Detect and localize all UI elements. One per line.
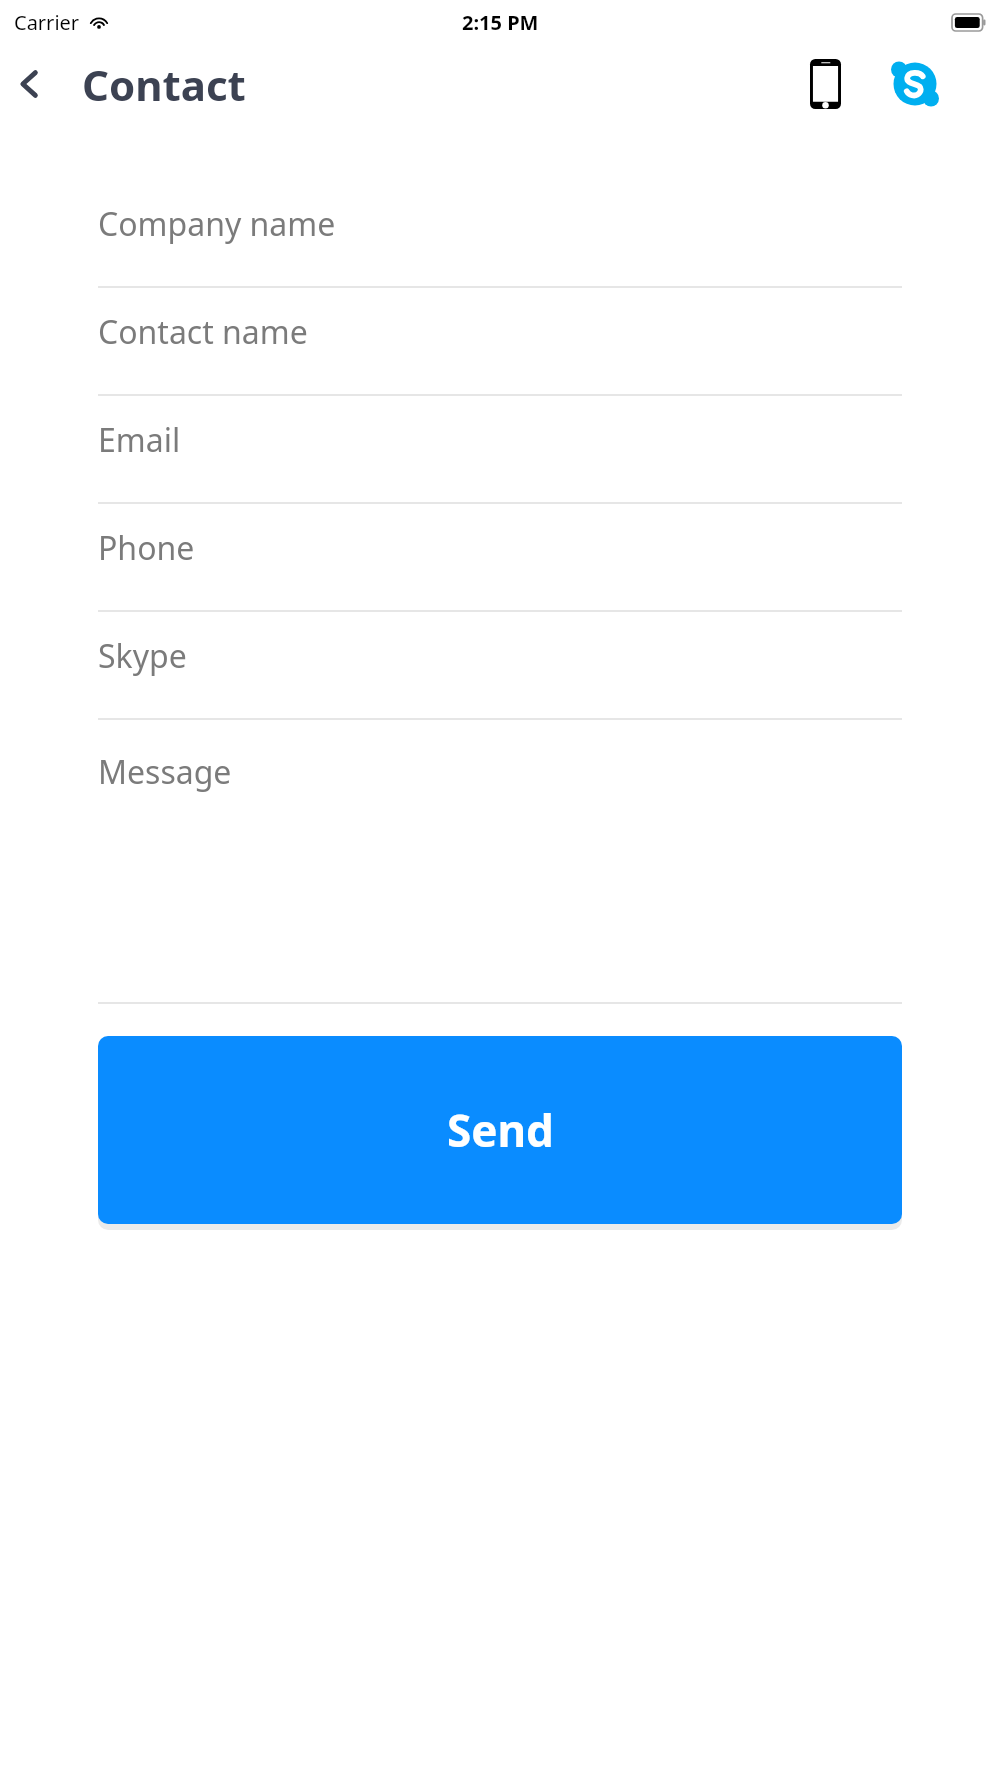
button[interactable]: Message: [0, 720, 1000, 1004]
button[interactable]: Phone: [0, 504, 1000, 612]
staticText: Contact name: [98, 310, 308, 354]
button[interactable]: Skype: [888, 57, 942, 111]
staticText: Carrier: [14, 9, 80, 36]
button[interactable]: Email: [0, 396, 1000, 504]
button[interactable]: Skype: [0, 612, 1000, 720]
button[interactable]: Contact name: [0, 288, 1000, 396]
staticText: Phone: [98, 526, 195, 570]
staticText: Email: [98, 418, 181, 462]
button[interactable]: Call phone: [798, 57, 852, 111]
button[interactable]: Back: [0, 54, 60, 114]
staticText: Skype: [98, 634, 187, 678]
staticText: Contact: [82, 56, 246, 113]
staticText: Message: [98, 750, 232, 794]
staticText: Send: [447, 1100, 554, 1160]
staticText: Company name: [98, 202, 336, 246]
staticText: 2:15 PM: [462, 9, 539, 36]
button[interactable]: Company name: [0, 180, 1000, 288]
button[interactable]: Send: [98, 1036, 902, 1224]
